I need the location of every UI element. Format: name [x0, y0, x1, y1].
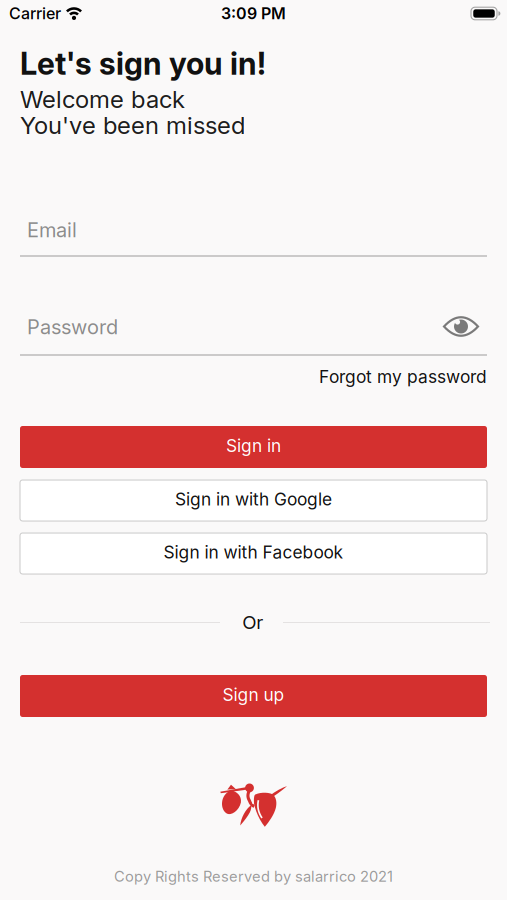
staticText: 3:09 PM: [221, 4, 286, 23]
button[interactable]: Show password: [441, 312, 481, 340]
staticText: Welcome back: [20, 85, 185, 113]
staticText: Let's sign you in!: [20, 45, 266, 82]
staticText: Carrier: [9, 4, 61, 23]
staticText: Copy Rights Reserved by salarrico 2021: [114, 868, 393, 885]
staticText: Email: [27, 218, 77, 242]
button[interactable]: Sign in with Facebook: [20, 533, 487, 574]
button[interactable]: Sign up: [20, 675, 487, 717]
staticText: You've been missed: [20, 111, 245, 139]
staticText: Sign in: [226, 436, 281, 456]
staticText: Sign up: [222, 685, 284, 705]
staticText: Or: [242, 611, 263, 633]
staticText: Forgot my password: [319, 367, 487, 387]
button[interactable]: Forgot my password: [319, 367, 487, 387]
button[interactable]: Sign in: [20, 426, 487, 468]
staticText: Password: [27, 315, 118, 339]
staticText: Sign in with Google: [175, 489, 332, 509]
staticText: Sign in with Facebook: [163, 542, 343, 562]
button[interactable]: Sign in with Google: [20, 480, 487, 521]
